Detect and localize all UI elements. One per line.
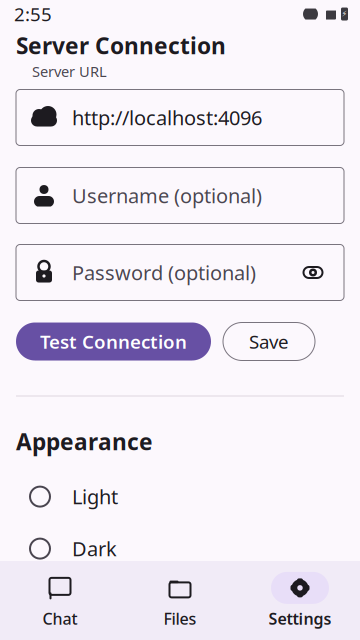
staticText: Settings <box>268 608 331 629</box>
staticText: Light <box>72 483 118 510</box>
button[interactable]: Show password <box>296 252 330 292</box>
staticText: Password (optional) <box>72 259 256 286</box>
staticText: Test Connection <box>40 329 187 354</box>
staticText: Server URL <box>32 61 107 81</box>
staticText: Dark <box>72 535 117 562</box>
staticText: Save <box>249 329 289 354</box>
staticText: Appearance <box>16 426 153 457</box>
button[interactable]: Light <box>0 471 360 523</box>
staticText: http://localhost:4096 <box>72 104 262 131</box>
button[interactable]: Dark <box>0 523 360 575</box>
button[interactable]: Files <box>120 566 240 635</box>
button[interactable]: Save <box>223 322 315 360</box>
button[interactable]: Settings <box>240 566 360 635</box>
button[interactable]: Test Connection <box>16 322 211 360</box>
staticText: Username (optional) <box>72 182 262 209</box>
staticText: Server Connection <box>16 30 226 60</box>
staticText: ⚡︎ <box>341 9 347 19</box>
staticText: Files <box>163 608 196 629</box>
staticText: 2:55 <box>14 2 52 26</box>
staticText: Chat <box>42 608 77 629</box>
button[interactable]: Chat <box>0 566 120 635</box>
